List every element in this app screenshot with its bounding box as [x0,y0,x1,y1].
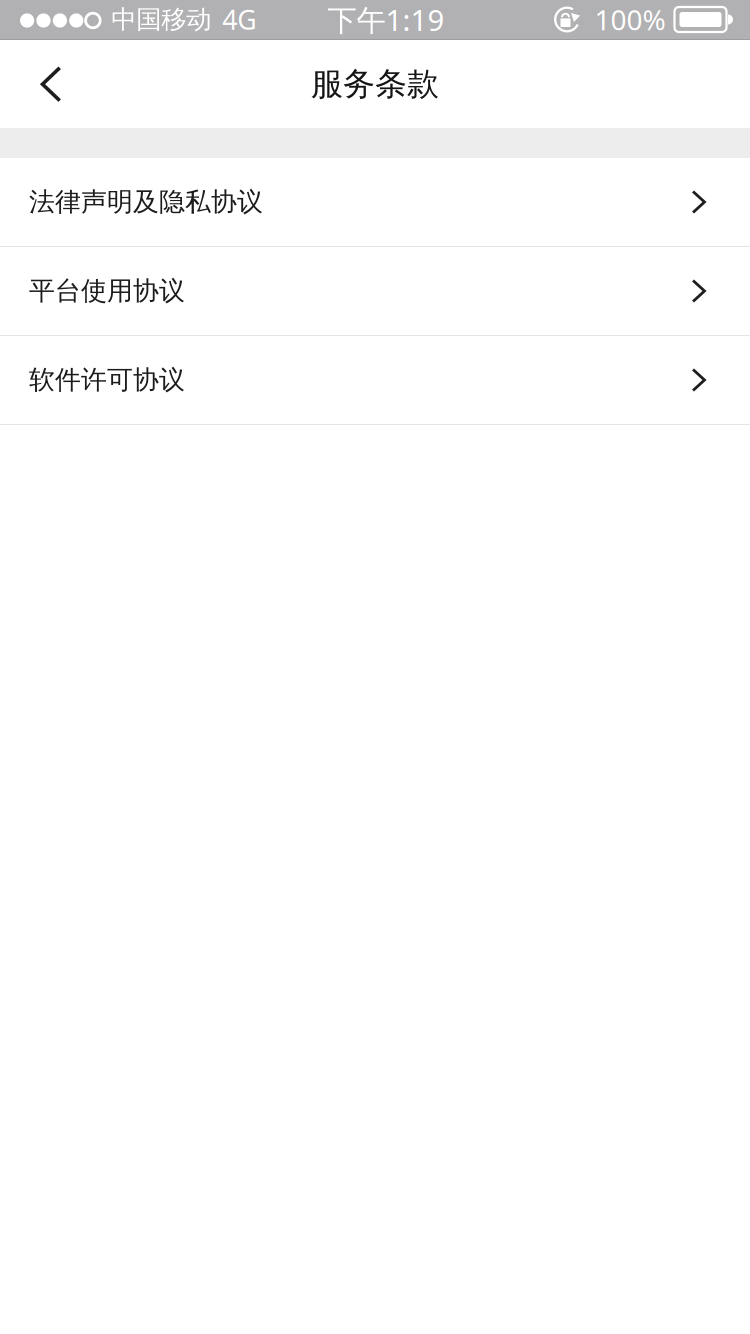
button[interactable]: 返回 [0,40,102,128]
staticText: 4G [222,2,256,37]
button[interactable]: 法律声明及隐私协议 [0,158,750,247]
staticText: 平台使用协议 [29,275,185,307]
staticText: 服务条款 [311,64,439,104]
button[interactable]: 软件许可协议 [0,336,750,425]
staticText: 中国移动 [111,4,211,35]
staticText: 100% [594,1,665,38]
staticText: 软件许可协议 [29,364,185,396]
staticText: 法律声明及隐私协议 [29,186,263,218]
button[interactable]: 平台使用协议 [0,247,750,336]
staticText: 下午1:19 [327,0,444,39]
